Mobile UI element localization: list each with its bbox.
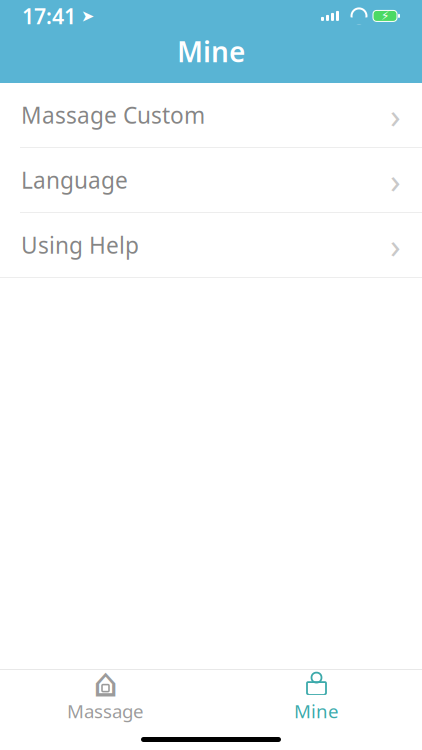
staticText: Using Help (21, 230, 139, 260)
button[interactable]: Massage Custom (0, 83, 422, 148)
staticText: 17:41 (22, 2, 76, 30)
staticText: Mine (294, 699, 339, 723)
staticText: ⌂ (93, 660, 118, 705)
staticText: Language (21, 165, 128, 195)
staticText: ⚡︎ (381, 9, 389, 23)
button[interactable]: ⌂ (0, 670, 211, 724)
staticText: ➤ (76, 7, 94, 25)
staticText: Massage Custom (21, 100, 205, 130)
staticText (367, 1, 373, 31)
staticText (339, 1, 351, 31)
staticText: › (390, 92, 401, 138)
button[interactable]: Using Help (0, 213, 422, 278)
staticText: › (390, 222, 401, 268)
staticText: Mine (177, 33, 245, 70)
button[interactable]: Mine (211, 670, 422, 724)
button[interactable]: Language (0, 148, 422, 213)
staticText: › (390, 157, 401, 203)
staticText: Massage (67, 699, 144, 723)
